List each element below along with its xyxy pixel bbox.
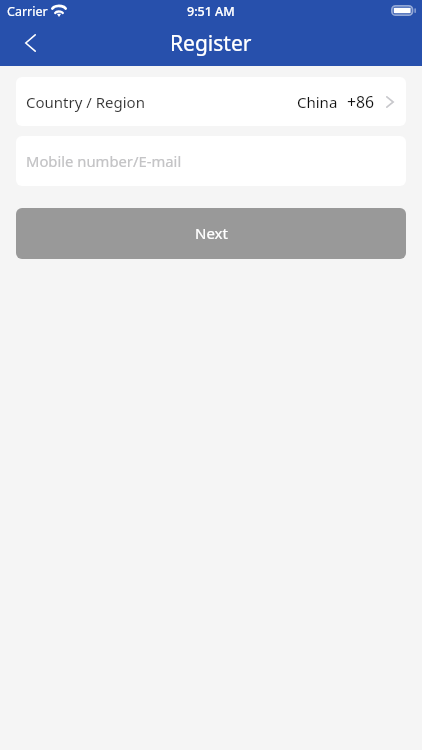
button[interactable]: Back [9,22,51,64]
staticText: Mobile number/E-mail [26,151,182,171]
staticText: Next [195,223,228,243]
button[interactable]: Mobile number/E-mail [16,136,406,186]
staticText: Country / Region [26,92,145,112]
staticText: China [297,92,338,112]
staticText: +86 [347,91,375,113]
button[interactable]: Country / Region [16,77,406,126]
staticText: 9:51 AM [187,3,235,20]
button[interactable]: Next [16,208,406,259]
staticText: Carrier [7,3,48,20]
staticText: Register [170,29,252,58]
